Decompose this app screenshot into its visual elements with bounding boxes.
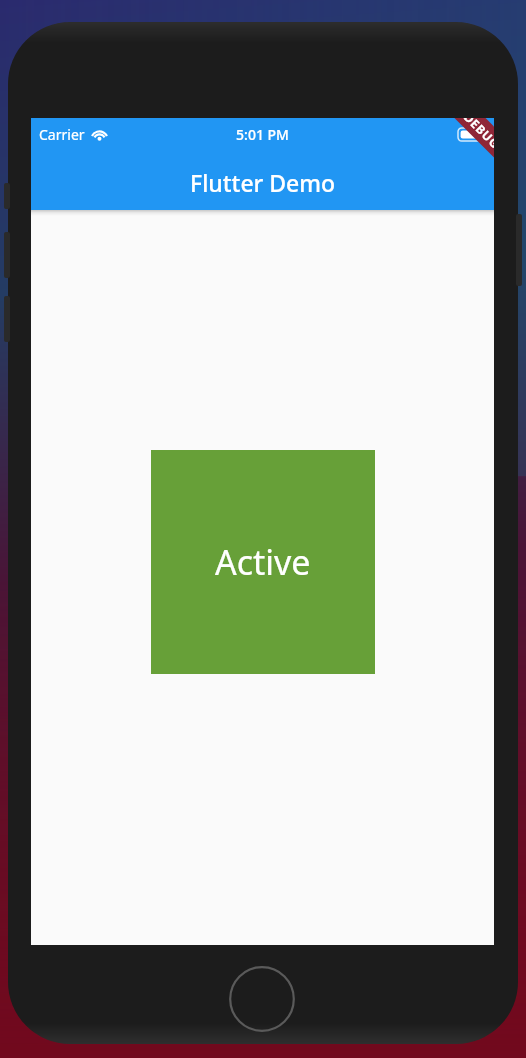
button[interactable]: Active bbox=[151, 450, 375, 674]
staticText: Carrier bbox=[39, 125, 85, 144]
staticText: Flutter Demo bbox=[190, 167, 336, 198]
staticText: DEBUG bbox=[461, 118, 494, 152]
button[interactable]: Home bbox=[229, 966, 295, 1032]
staticText: 5:01 PM bbox=[236, 125, 289, 144]
staticText: Active bbox=[215, 539, 311, 585]
